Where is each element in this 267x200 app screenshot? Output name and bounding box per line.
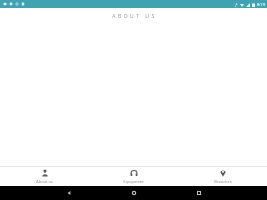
staticText: Branches <box>214 179 232 184</box>
button[interactable]: About us <box>0 167 89 186</box>
staticText: About us <box>36 179 53 184</box>
staticText: A B O U T U S <box>112 13 155 20</box>
button[interactable]: Home <box>101 186 166 200</box>
button[interactable]: Recents <box>166 186 231 200</box>
button[interactable]: Equipment <box>89 167 178 186</box>
button[interactable]: Back <box>36 186 101 200</box>
button[interactable]: Branches <box>178 167 267 186</box>
staticText: 8:19 <box>257 2 265 7</box>
staticText: Equipment <box>123 179 144 184</box>
